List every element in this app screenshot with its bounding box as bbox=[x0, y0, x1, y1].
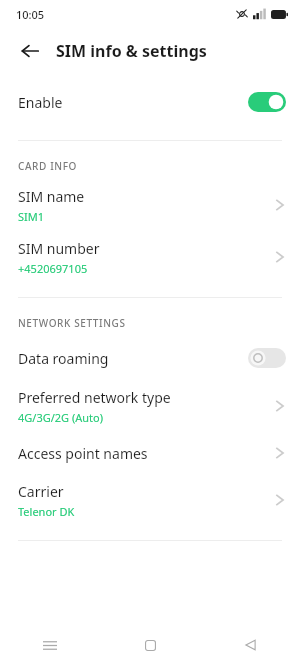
staticText: Telenor DK bbox=[18, 504, 75, 519]
staticText: Access point names bbox=[18, 444, 148, 463]
staticText: 4G/3G/2G (Auto) bbox=[18, 410, 103, 425]
button[interactable]: SIM number bbox=[0, 231, 300, 283]
button[interactable]: Back bbox=[200, 623, 300, 667]
button[interactable]: Back bbox=[14, 35, 46, 67]
button[interactable]: Enable bbox=[0, 80, 300, 124]
staticText: Carrier bbox=[18, 482, 64, 501]
button[interactable]: Carrier bbox=[0, 474, 300, 526]
staticText: CARD INFO bbox=[18, 159, 77, 173]
staticText: Preferred network type bbox=[18, 388, 171, 407]
button[interactable]: SIM name bbox=[0, 179, 300, 231]
button[interactable]: Preferred network type bbox=[0, 380, 300, 432]
button[interactable]: Access point names bbox=[0, 432, 300, 474]
staticText: SIM number bbox=[18, 239, 100, 258]
button[interactable]: Recents bbox=[0, 623, 100, 667]
staticText: SIM name bbox=[18, 187, 85, 206]
staticText: SIM info & settings bbox=[56, 40, 207, 62]
staticText: Enable bbox=[18, 93, 248, 112]
staticText: NETWORK SETTINGS bbox=[18, 316, 126, 330]
button[interactable]: Data roaming bbox=[0, 336, 300, 380]
staticText: SIM1 bbox=[18, 209, 45, 224]
staticText: +4520697105 bbox=[18, 261, 88, 276]
button[interactable]: Home bbox=[100, 623, 200, 667]
staticText: Data roaming bbox=[18, 349, 248, 368]
staticText: 10:05 bbox=[16, 7, 45, 22]
